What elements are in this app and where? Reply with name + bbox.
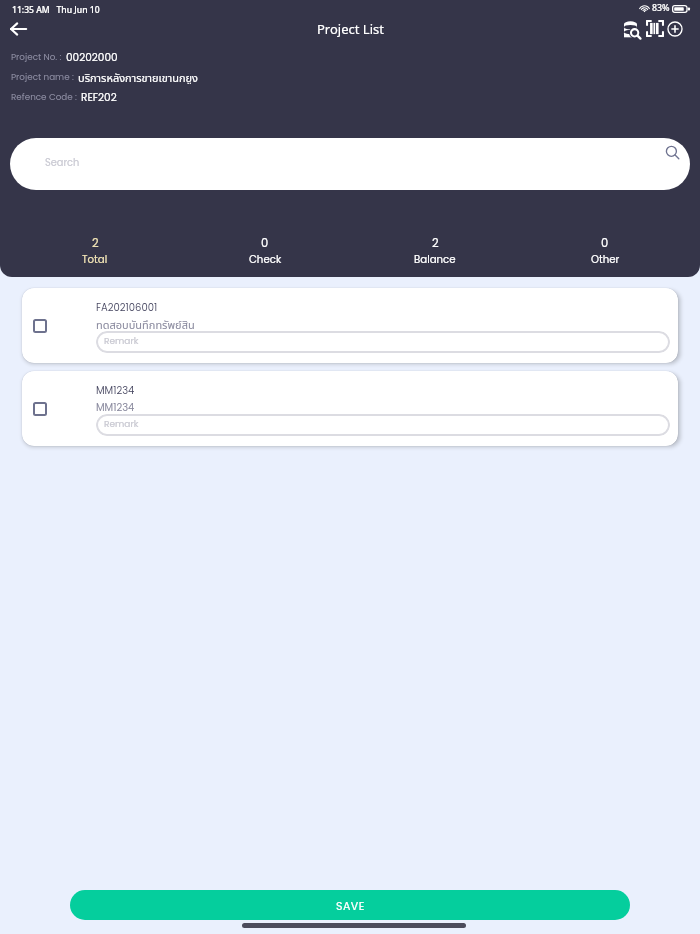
staticText: ทดสอบบันทึกทรัพย์สิน [96,317,195,331]
staticText: Project List [317,20,384,38]
staticText: 11:35 AM Thu Jun 10 [12,4,100,16]
staticText: Total [82,252,108,266]
staticText: 0 [601,235,609,251]
staticText: REF202 [81,90,117,104]
button[interactable]: Remark [96,331,670,353]
button[interactable]: SAVE [70,890,630,920]
staticText: Remark [104,418,139,431]
staticText: Remark [104,335,139,348]
staticText: Other [591,252,620,266]
staticText: Refence Code : [11,91,77,103]
staticText: บริการหลังการขายเขานกยูง [78,70,198,84]
staticText: Check [249,252,282,266]
staticText: Balance [414,252,456,266]
button[interactable]: Select item [33,319,47,333]
button[interactable]: Search [10,138,690,190]
staticText: 83% [652,2,670,14]
button[interactable]: 2 [10,233,180,268]
button[interactable]: Search database [619,16,646,43]
button[interactable]: Select item [22,371,678,446]
staticText: Project name : [11,71,74,83]
button[interactable]: 2 [350,233,520,268]
staticText: MM1234 [96,400,135,414]
button[interactable]: Back [4,14,33,43]
button[interactable]: Scan barcode [641,15,668,42]
staticText: 2 [432,235,439,251]
staticText: SAVE [336,898,365,913]
button[interactable]: 0 [520,233,690,268]
staticText: Search [45,156,80,170]
staticText: 00202000 [66,50,118,64]
staticText: MM1234 [96,383,135,397]
staticText: FA202106001 [96,300,158,314]
button[interactable]: Select item [33,402,47,416]
button[interactable]: Add [661,15,688,42]
button[interactable]: 0 [180,233,350,268]
button[interactable]: Select item [22,288,678,363]
staticText: 0 [261,235,269,251]
button[interactable]: Remark [96,414,670,436]
staticText: 2 [92,235,99,251]
staticText: Project No. : [11,51,62,63]
